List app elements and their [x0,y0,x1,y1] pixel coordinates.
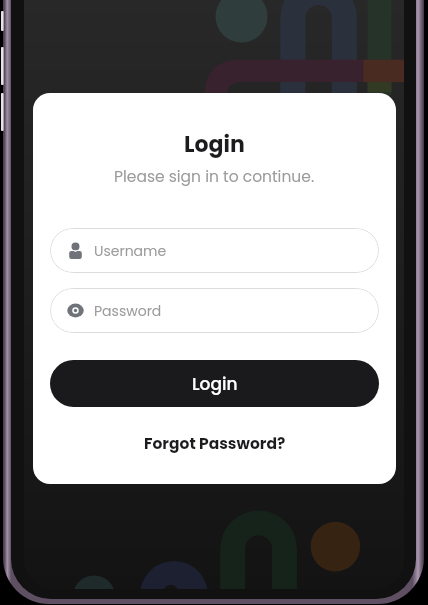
staticText: Please sign in to continue. [114,166,315,188]
button[interactable]: Forgot Password? [136,429,294,459]
button[interactable]: Password [50,288,379,333]
staticText: Username [94,241,167,261]
button[interactable]: Login [50,360,379,407]
button[interactable]: Username [50,228,379,273]
staticText: Login [184,129,245,160]
staticText: Forgot Password? [144,433,286,455]
staticText: Password [94,301,162,321]
staticText: Login [192,372,238,396]
